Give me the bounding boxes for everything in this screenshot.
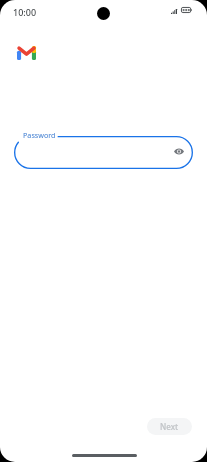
staticText: 10:00	[13, 6, 37, 18]
button[interactable]: Show password	[167, 140, 190, 163]
button[interactable]: Next	[147, 418, 192, 435]
staticText: Password	[23, 130, 56, 140]
staticText: Next	[160, 421, 179, 432]
